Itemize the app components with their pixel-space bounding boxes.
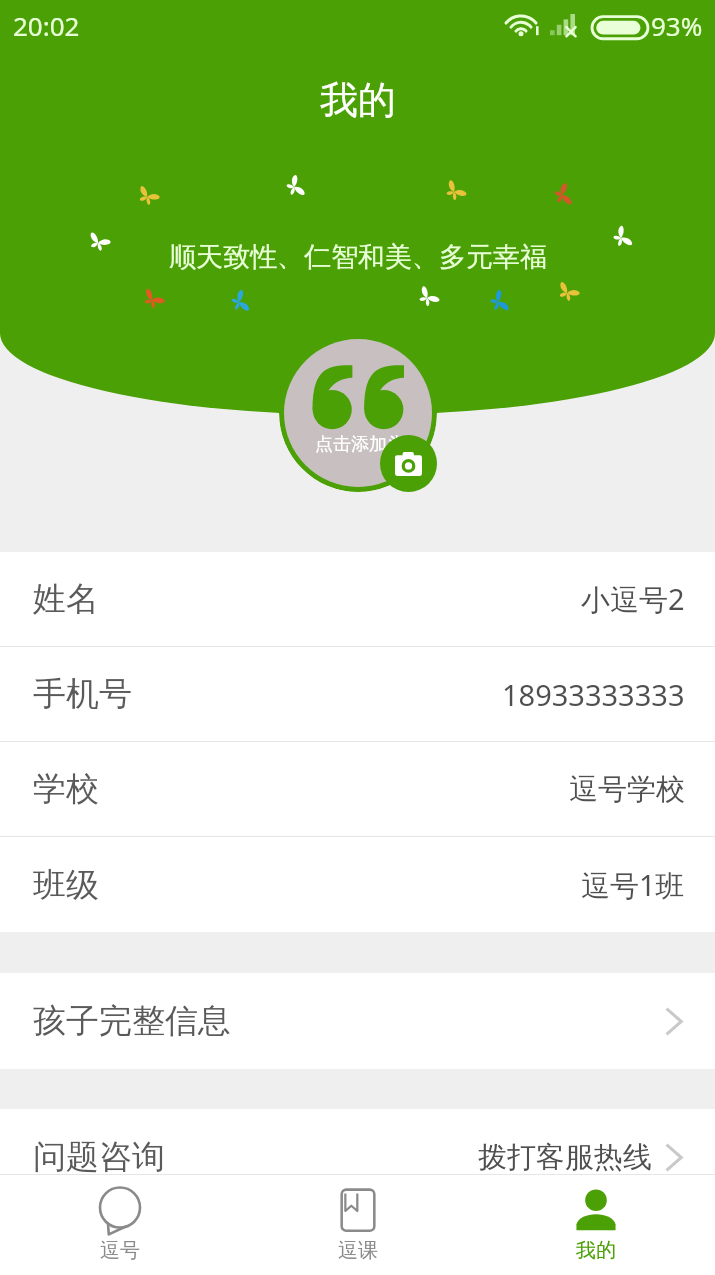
staticText: 顺天致性、仁智和美、多元幸福	[169, 240, 547, 274]
button[interactable]: 学校	[0, 742, 715, 837]
staticText: 班级	[33, 864, 99, 906]
staticText: 逗号1班	[581, 865, 685, 905]
staticText: 逗课	[338, 1238, 378, 1263]
staticText: 20:02	[13, 8, 80, 43]
staticText: 我的	[320, 76, 396, 124]
staticText: 手机号	[33, 673, 132, 715]
button[interactable]: 手机号	[0, 647, 715, 742]
button[interactable]: 拍照	[380, 435, 437, 492]
staticText: 问题咨询	[33, 1136, 165, 1178]
staticText: 逗号学校	[569, 771, 685, 808]
button[interactable]: 逗号	[0, 1175, 239, 1275]
staticText: 18933333333	[502, 675, 685, 714]
staticText: 93%	[651, 8, 703, 43]
button[interactable]: 逗课	[239, 1175, 477, 1275]
button[interactable]: 班级	[0, 837, 715, 932]
staticText: 孩子完整信息	[33, 1000, 231, 1042]
button[interactable]: 问题咨询	[0, 1109, 715, 1205]
staticText: 逗号	[100, 1238, 140, 1263]
button[interactable]: 我的	[477, 1175, 715, 1275]
staticText: 姓名	[33, 578, 99, 620]
staticText: 拨打客服热线	[478, 1139, 652, 1176]
button[interactable]: 姓名	[0, 552, 715, 647]
staticText: 学校	[33, 768, 99, 810]
staticText: 小逗号2	[581, 579, 685, 619]
button[interactable]: 点击添加头像	[279, 334, 437, 492]
button[interactable]: 孩子完整信息	[0, 973, 715, 1069]
staticText: 点击添加头像	[315, 433, 423, 456]
staticText: 我的	[576, 1238, 616, 1263]
